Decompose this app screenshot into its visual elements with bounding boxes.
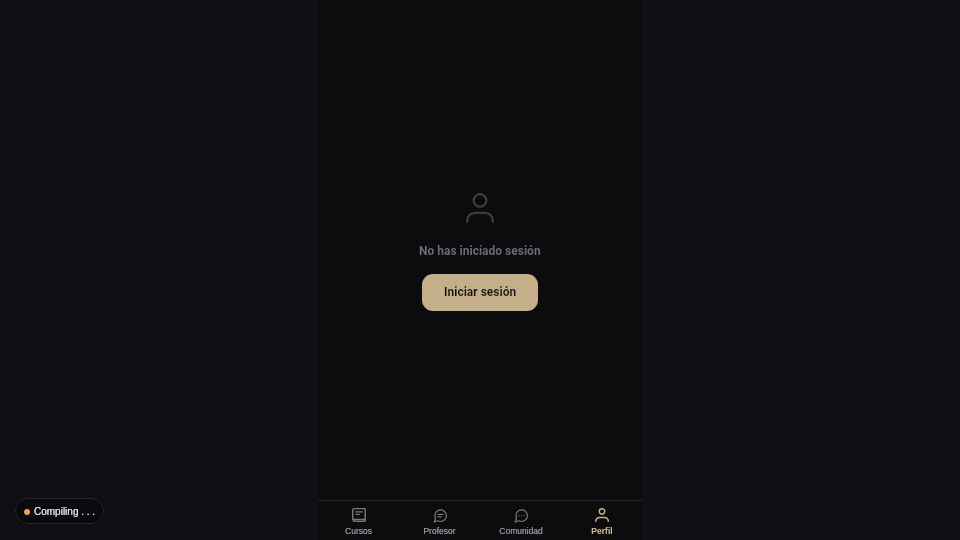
button[interactable]: Cursos bbox=[318, 501, 399, 540]
staticText: No has iniciado sesión bbox=[419, 244, 541, 258]
staticText: Comunidad bbox=[499, 526, 543, 535]
staticText: Profesor bbox=[423, 526, 456, 535]
staticText: Iniciar sesión bbox=[444, 285, 517, 299]
button[interactable]: Perfil bbox=[561, 501, 642, 540]
button[interactable]: Iniciar sesión bbox=[422, 274, 538, 311]
button[interactable]: Profesor bbox=[399, 501, 480, 540]
staticText: Cursos bbox=[345, 526, 372, 535]
staticText: Compiling . . . bbox=[34, 506, 96, 517]
staticText: Perfil bbox=[591, 526, 613, 535]
button[interactable]: Compiling . . . bbox=[15, 498, 104, 524]
button[interactable]: Comunidad bbox=[480, 501, 561, 540]
